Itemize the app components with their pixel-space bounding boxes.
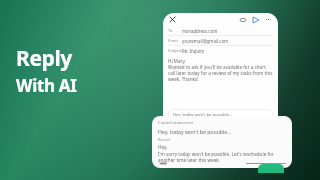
- staticText: youremail@gmail.com: [182, 38, 229, 44]
- staticText: Wanted to ask if you'll be available for…: [168, 64, 266, 70]
- staticText: Copied statement: [158, 120, 193, 126]
- staticText: Hey,: [158, 144, 168, 150]
- button[interactable]: Regenerate: [158, 163, 168, 164]
- staticText: From: [168, 38, 178, 43]
- button[interactable]: Reply: [185, 125, 225, 138]
- staticText: Hey, today won't be possible...: [173, 112, 233, 118]
- button[interactable]: More options: [264, 15, 273, 24]
- button[interactable]: Hey, today won't be possible...: [168, 109, 273, 120]
- staticText: msnaddress.com: [182, 28, 218, 34]
- staticText: Re: Inquiry: [182, 48, 205, 54]
- button[interactable]: Apply: [246, 163, 286, 164]
- staticText: call later today for a review of my task…: [168, 70, 273, 76]
- staticText: Hey, today won't be possible...: [158, 128, 232, 135]
- staticText: With AI: [16, 74, 77, 97]
- button[interactable]: Close: [168, 15, 177, 24]
- staticText: Subject: [168, 48, 182, 53]
- staticText: Reply: [191, 127, 210, 137]
- staticText: Result: [158, 137, 171, 143]
- staticText: To: [168, 28, 173, 33]
- button[interactable]: Attach: [238, 15, 247, 24]
- staticText: another time later this week.: [158, 157, 220, 163]
- staticText: I'm sorry today won't be possible. Let's…: [158, 151, 274, 157]
- staticText: Hi Mary,: [168, 58, 186, 64]
- button[interactable]: Send: [251, 15, 260, 24]
- staticText: week. Thanks!: [168, 76, 199, 82]
- button[interactable]: AI assistant: [169, 126, 180, 137]
- staticText: Reply: [16, 44, 72, 73]
